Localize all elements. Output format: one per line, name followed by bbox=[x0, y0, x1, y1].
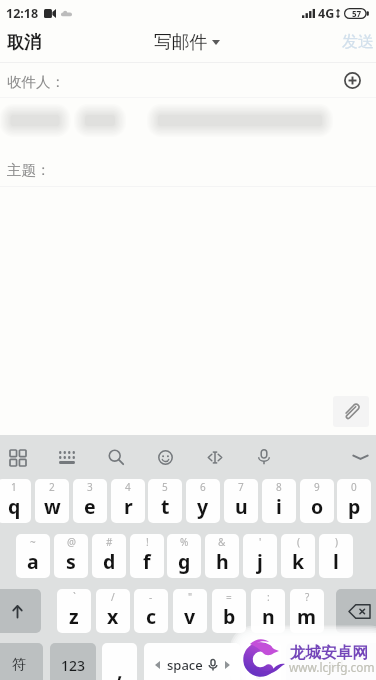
button[interactable]: 2 bbox=[35, 479, 69, 523]
button[interactable]: @ bbox=[54, 534, 88, 578]
staticText: ' bbox=[259, 535, 262, 549]
staticText: u bbox=[235, 493, 248, 520]
staticText: 写邮件 bbox=[154, 31, 208, 53]
button[interactable]: Keyboard layouts bbox=[3, 442, 33, 472]
staticText: h bbox=[216, 548, 229, 575]
staticText: % bbox=[180, 535, 189, 549]
staticText: m bbox=[297, 603, 317, 630]
button[interactable]: Attach file bbox=[333, 396, 369, 427]
button[interactable]: # bbox=[92, 534, 126, 578]
staticText: f bbox=[143, 548, 151, 575]
button[interactable]: % bbox=[167, 534, 201, 578]
button[interactable]: & bbox=[205, 534, 239, 578]
staticText: ) bbox=[335, 535, 338, 549]
button[interactable]: 。 bbox=[246, 643, 281, 680]
staticText: 4 bbox=[125, 480, 131, 494]
staticText: 8 bbox=[276, 480, 282, 494]
button[interactable]: Shift bbox=[0, 589, 41, 633]
staticText: @ bbox=[67, 535, 76, 549]
button[interactable]: 6 bbox=[186, 479, 220, 523]
staticText: www.lcjrfg.com bbox=[289, 659, 375, 675]
button[interactable]: 3 bbox=[73, 479, 107, 523]
staticText: = bbox=[226, 590, 232, 604]
staticText: d bbox=[103, 548, 116, 575]
button[interactable]: 4 bbox=[111, 479, 145, 523]
button[interactable]: 7 bbox=[224, 479, 258, 523]
button[interactable]: = bbox=[212, 589, 246, 633]
button[interactable]: ! bbox=[130, 534, 164, 578]
button[interactable]: ' bbox=[243, 534, 277, 578]
staticText: n bbox=[262, 603, 275, 630]
staticText: 龙城安卓网 bbox=[290, 643, 368, 663]
staticText: l bbox=[333, 548, 339, 575]
button[interactable]: 0 bbox=[337, 479, 371, 523]
staticText: 发送 bbox=[342, 32, 374, 52]
staticText: 0 bbox=[351, 480, 357, 494]
staticText: 123 bbox=[61, 656, 86, 675]
button[interactable]: : bbox=[251, 589, 285, 633]
button[interactable]: 符 bbox=[0, 643, 43, 680]
staticText: 9 bbox=[314, 480, 320, 494]
button[interactable]: ( bbox=[281, 534, 315, 578]
staticText: 2 bbox=[49, 480, 55, 494]
staticText: 4G bbox=[318, 5, 335, 22]
button[interactable]: 取消 bbox=[0, 24, 51, 60]
staticText: p bbox=[348, 493, 361, 520]
staticText: q bbox=[8, 493, 21, 520]
button[interactable]: Search bbox=[101, 442, 131, 472]
staticText: y bbox=[197, 493, 209, 520]
staticText: w bbox=[44, 493, 61, 520]
staticText: ~ bbox=[30, 535, 36, 549]
button[interactable]: ) bbox=[319, 534, 353, 578]
button[interactable]: / bbox=[96, 589, 130, 633]
staticText: 主题： bbox=[7, 161, 51, 179]
staticText: e bbox=[84, 493, 96, 520]
staticText: s bbox=[66, 548, 76, 575]
button[interactable]: 5 bbox=[148, 479, 182, 523]
staticText: - bbox=[149, 590, 153, 604]
staticText: 57 bbox=[352, 8, 362, 19]
button[interactable]: Enter bbox=[286, 643, 376, 680]
button[interactable]: 写邮件 bbox=[152, 24, 222, 60]
staticText: & bbox=[218, 535, 226, 549]
button[interactable]: space bbox=[144, 643, 240, 680]
staticText: a bbox=[27, 548, 39, 575]
staticText: / bbox=[111, 590, 115, 604]
staticText: j bbox=[257, 548, 263, 575]
staticText: " bbox=[188, 590, 193, 604]
button[interactable]: , bbox=[102, 643, 137, 680]
button[interactable]: Hide keyboard bbox=[345, 442, 375, 472]
button[interactable]: Voice input bbox=[249, 442, 279, 472]
button[interactable]: " bbox=[173, 589, 207, 633]
button[interactable]: - bbox=[134, 589, 168, 633]
staticText: 3 bbox=[87, 480, 93, 494]
button[interactable]: Translate bbox=[200, 442, 230, 472]
staticText: t bbox=[161, 493, 170, 520]
button[interactable]: 123 bbox=[50, 643, 96, 680]
staticText: b bbox=[223, 603, 236, 630]
staticText: o bbox=[311, 493, 324, 520]
button[interactable]: Backspace bbox=[336, 589, 376, 633]
staticText: 。 bbox=[254, 658, 274, 680]
button[interactable]: 8 bbox=[262, 479, 296, 523]
staticText: c bbox=[146, 603, 157, 630]
button[interactable]: ? bbox=[290, 589, 324, 633]
staticText: # bbox=[106, 535, 113, 549]
button[interactable]: ` bbox=[57, 589, 91, 633]
button[interactable]: Keyboard bbox=[52, 442, 82, 472]
button[interactable]: Emoji bbox=[150, 442, 180, 472]
staticText: x bbox=[107, 603, 119, 630]
button[interactable]: 1 bbox=[0, 479, 31, 523]
staticText: 5 bbox=[162, 480, 168, 494]
staticText: g bbox=[178, 548, 191, 575]
button[interactable]: Add recipient bbox=[337, 65, 367, 95]
staticText: 取消 bbox=[7, 31, 42, 53]
staticText: i bbox=[276, 493, 282, 520]
staticText: z bbox=[69, 603, 79, 630]
button[interactable]: 发送 bbox=[330, 24, 376, 60]
staticText: r bbox=[124, 493, 133, 520]
staticText: 符 bbox=[12, 656, 26, 674]
button[interactable]: ~ bbox=[16, 534, 50, 578]
staticText: ! bbox=[146, 535, 149, 549]
button[interactable]: 9 bbox=[300, 479, 334, 523]
